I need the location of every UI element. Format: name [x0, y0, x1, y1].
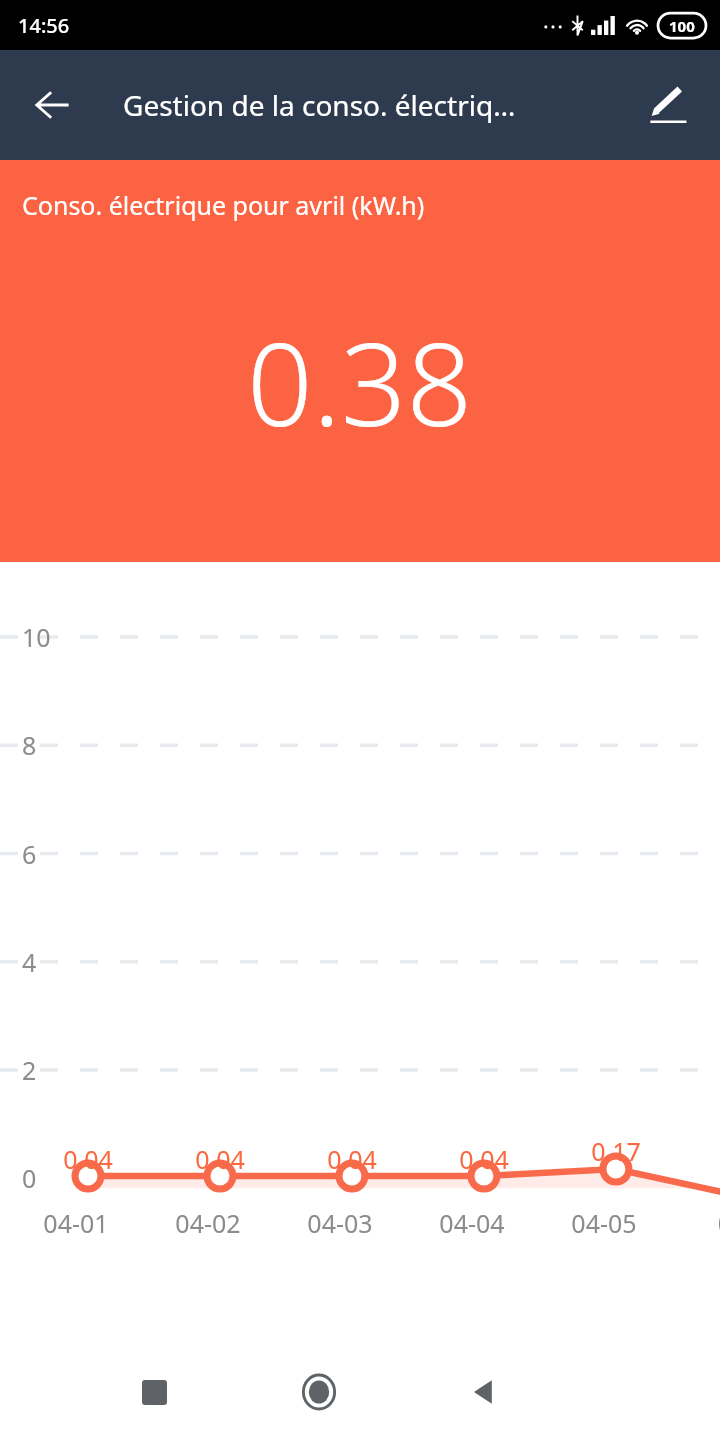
staticText: 0.04	[43, 1142, 133, 1176]
staticText: 10	[22, 620, 51, 654]
staticText: 04-01	[28, 1206, 124, 1240]
staticText: 04-	[688, 1206, 720, 1240]
staticText: 04-05	[556, 1206, 652, 1240]
staticText: 04-04	[424, 1206, 520, 1240]
button[interactable]: Home	[279, 1352, 359, 1432]
staticText: 0.17	[571, 1134, 661, 1168]
staticText: 4	[22, 945, 37, 979]
staticText: Conso. électrique pour avril (kW.h)	[22, 188, 425, 222]
staticText: 04-03	[292, 1206, 388, 1240]
staticText: 0	[22, 1161, 37, 1195]
button[interactable]: Back	[444, 1352, 524, 1432]
staticText: 0.04	[307, 1142, 397, 1176]
staticText: 100	[669, 16, 695, 36]
staticText: Gestion de la conso. électriq…	[123, 86, 516, 124]
button[interactable]: Recents	[114, 1352, 194, 1432]
staticText: 0.04	[439, 1142, 529, 1176]
staticText: 04-02	[160, 1206, 256, 1240]
staticText: 6	[22, 837, 37, 871]
button[interactable]: Edit	[632, 69, 704, 141]
staticText: 14:56	[18, 12, 70, 39]
button[interactable]: Back	[16, 69, 88, 141]
staticText: 0.04	[175, 1142, 265, 1176]
staticText: 2	[22, 1053, 37, 1087]
staticText: 8	[22, 728, 37, 762]
staticText: 0.38	[247, 303, 473, 460]
